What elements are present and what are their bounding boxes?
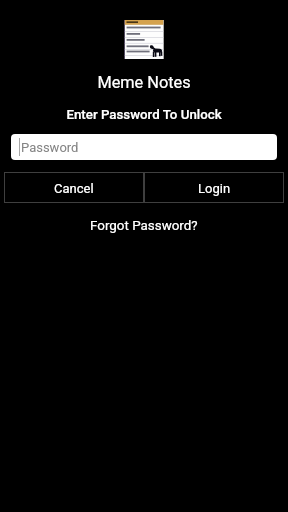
staticText: Login [198, 181, 231, 196]
staticText: Cancel [54, 181, 94, 196]
button[interactable]: Login [144, 172, 284, 203]
staticText: Password [21, 140, 79, 155]
other: Meme Notes app icon [124, 20, 164, 59]
staticText: Forgot Password? [90, 218, 198, 234]
staticText: Enter Password To Unlock [66, 107, 222, 123]
button[interactable]: Forgot Password? [84, 216, 204, 236]
staticText: Meme Notes [97, 73, 191, 92]
button[interactable]: Password input field [11, 134, 277, 160]
button[interactable]: Cancel [4, 172, 144, 203]
